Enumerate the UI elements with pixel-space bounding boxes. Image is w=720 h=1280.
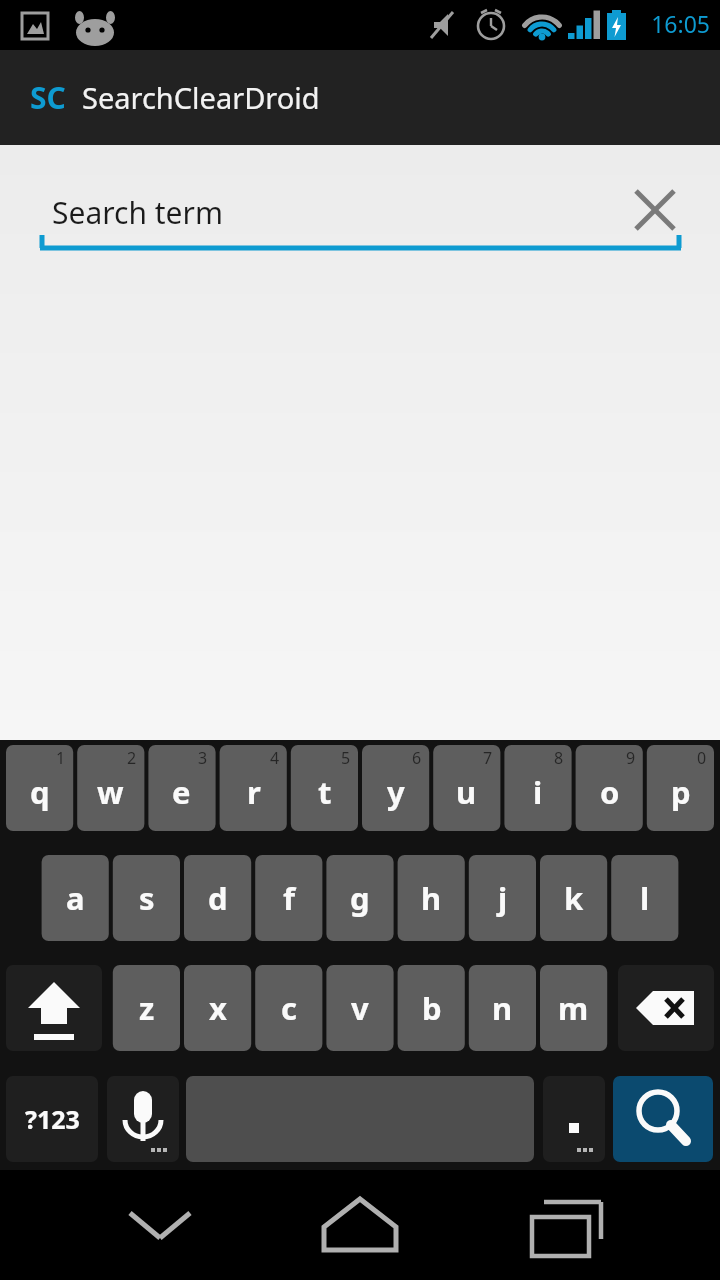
staticText: z (139, 987, 155, 1029)
button[interactable]: r (220, 745, 287, 831)
button[interactable]: q (6, 745, 73, 831)
staticText: 16:05 (580, 8, 710, 39)
staticText: 1 (56, 747, 66, 769)
staticText: d (208, 877, 228, 919)
staticText: s (139, 877, 155, 919)
staticText: i (533, 771, 543, 813)
staticText: b (422, 987, 442, 1029)
staticText: k (564, 877, 584, 919)
button[interactable]: v (326, 965, 393, 1051)
staticText: m (558, 987, 589, 1029)
button[interactable]: c (255, 965, 322, 1051)
staticText: SearchClearDroid (82, 78, 320, 117)
staticText: r (247, 771, 261, 813)
button[interactable]: p (647, 745, 714, 831)
button[interactable]: Backspace (618, 965, 714, 1051)
staticText: f (283, 877, 295, 919)
button[interactable]: Period (543, 1076, 605, 1162)
button[interactable]: x (184, 965, 251, 1051)
button[interactable]: Shift (6, 965, 102, 1051)
button[interactable]: o (576, 745, 643, 831)
staticText: t (318, 771, 332, 813)
button[interactable]: Home (300, 1170, 420, 1280)
staticText: 8 (554, 747, 564, 769)
staticText: 4 (270, 747, 280, 769)
staticText: c (281, 987, 297, 1029)
staticText: ?123 (25, 1102, 80, 1136)
staticText: 7 (483, 747, 493, 769)
staticText: 3 (198, 747, 208, 769)
staticText: 9 (626, 747, 636, 769)
button[interactable]: a (42, 855, 109, 941)
button[interactable]: Search term (40, 175, 620, 250)
staticText: o (600, 771, 620, 813)
staticText: Search term (52, 192, 223, 233)
button[interactable]: d (184, 855, 251, 941)
button[interactable]: Recent apps (502, 1170, 622, 1280)
button[interactable]: b (398, 965, 465, 1051)
staticText: n (492, 987, 513, 1029)
button[interactable]: e (148, 745, 215, 831)
staticText: h (421, 877, 442, 919)
staticText: e (172, 771, 191, 813)
button[interactable]: n (469, 965, 536, 1051)
button[interactable]: g (326, 855, 393, 941)
button[interactable]: h (398, 855, 465, 941)
staticText: 2 (127, 747, 137, 769)
staticText: v (351, 987, 369, 1029)
staticText: 6 (412, 747, 422, 769)
button[interactable]: Voice input (107, 1076, 179, 1162)
staticText: x (209, 987, 227, 1029)
button[interactable]: ?123 (6, 1076, 98, 1162)
staticText: y (387, 771, 405, 813)
staticText: 5 (341, 747, 351, 769)
button[interactable]: Hide keyboard (100, 1170, 220, 1280)
staticText: a (66, 877, 85, 919)
staticText: g (350, 877, 370, 919)
staticText: l (640, 877, 650, 919)
button[interactable]: j (469, 855, 536, 941)
button[interactable]: l (611, 855, 678, 941)
staticText: p (671, 771, 691, 813)
button[interactable]: z (113, 965, 180, 1051)
button[interactable]: Search (613, 1076, 713, 1162)
button[interactable]: Clear search (620, 175, 692, 247)
staticText: 0 (697, 747, 707, 769)
staticText: SC (30, 77, 66, 118)
button[interactable]: k (540, 855, 607, 941)
staticText: w (97, 771, 124, 813)
button[interactable]: w (77, 745, 144, 831)
button[interactable]: s (113, 855, 180, 941)
button[interactable]: m (540, 965, 607, 1051)
button[interactable]: t (291, 745, 358, 831)
button[interactable]: i (504, 745, 571, 831)
button[interactable]: f (255, 855, 322, 941)
staticText: u (456, 771, 477, 813)
button[interactable]: u (433, 745, 500, 831)
button[interactable]: y (362, 745, 429, 831)
staticText: q (30, 771, 50, 813)
staticText: j (498, 877, 508, 919)
